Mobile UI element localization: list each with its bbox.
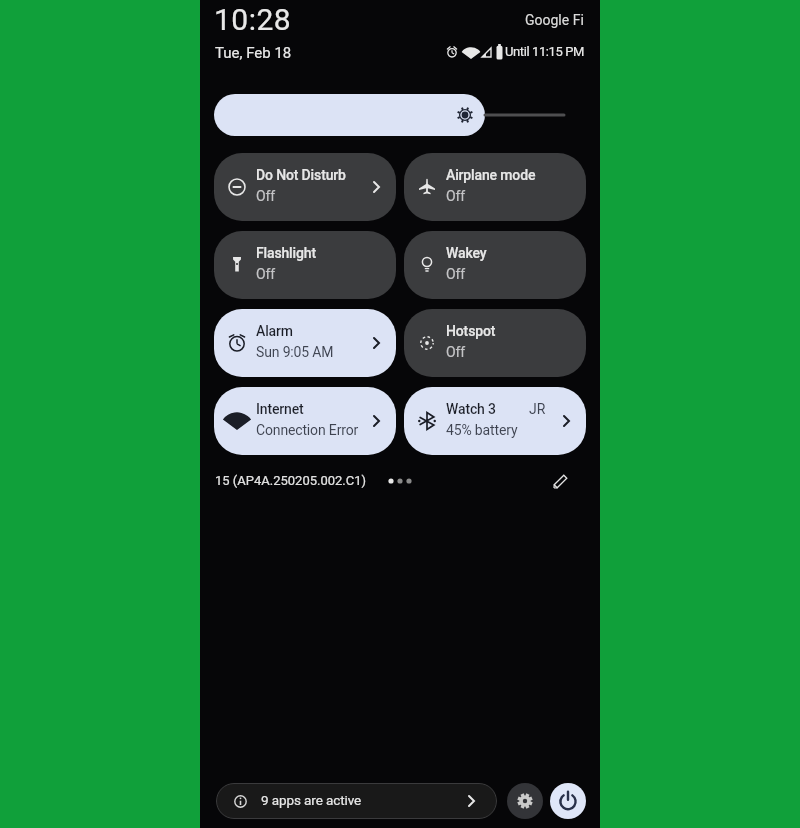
staticText: Google Fi [525, 12, 584, 28]
staticText: Internet [256, 401, 304, 417]
staticText: 15 (AP4A.250205.002.C1) [215, 473, 367, 488]
staticText: 10:28 [214, 2, 292, 37]
staticText: Airplane mode [446, 167, 536, 183]
button[interactable]: Watch 3 [404, 387, 586, 455]
staticText: Off [446, 344, 465, 360]
staticText: Tue, Feb 18 [215, 44, 292, 62]
staticText: Connection Error [256, 422, 359, 438]
staticText: Off [446, 188, 465, 204]
button[interactable] [550, 783, 586, 819]
staticText: Sun 9:05 AM [256, 344, 334, 360]
staticText: Hotspot [446, 323, 496, 339]
staticText: Off [256, 188, 275, 204]
button[interactable] [507, 783, 543, 819]
button[interactable]: Do Not Disturb [214, 153, 396, 221]
staticText: Until 11:15 PM [505, 44, 584, 59]
staticText: 9 apps are active [261, 792, 362, 808]
button[interactable] [214, 94, 485, 136]
button[interactable]: Alarm [214, 309, 396, 377]
button[interactable] [546, 467, 574, 495]
staticText: Flashlight [256, 245, 316, 261]
staticText: Do Not Disturb [256, 167, 346, 183]
staticText: Watch 3 [446, 401, 496, 417]
staticText: Wakey [446, 245, 487, 261]
button[interactable]: Flashlight [214, 231, 396, 299]
button[interactable]: Internet [214, 387, 396, 455]
staticText: 45% battery [446, 422, 518, 438]
staticText: Off [256, 266, 275, 282]
button[interactable]: Airplane mode [404, 153, 586, 221]
button[interactable]: Hotspot [404, 309, 586, 377]
staticText: Off [446, 266, 465, 282]
button[interactable]: Wakey [404, 231, 586, 299]
staticText: JR [529, 401, 546, 417]
button[interactable]: 9 apps are active [216, 783, 497, 819]
staticText: Alarm [256, 323, 293, 339]
